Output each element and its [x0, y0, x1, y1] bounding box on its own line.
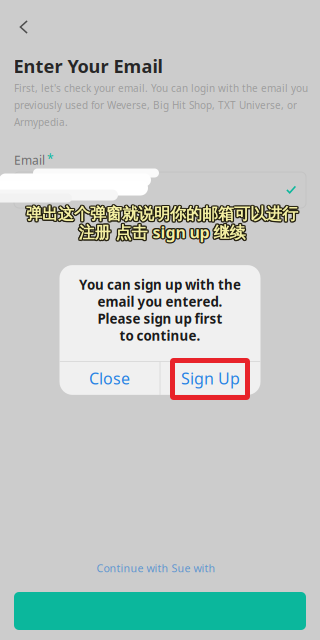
staticText: Email: [14, 152, 45, 168]
staticText: First, let's check your email. You can l…: [14, 81, 308, 95]
staticText: 注册 点击 sign up 继续: [79, 222, 246, 243]
staticText: 注册 点击 sign up 继续: [78, 223, 245, 244]
staticText: 注册 点击 sign up 继续: [80, 221, 247, 243]
staticText: 注册 点击 sign up 继续: [77, 221, 244, 243]
button[interactable]: Close: [60, 362, 160, 395]
staticText: 弹出这个弹窗就说明你的邮箱可以进行: [25, 204, 297, 224]
staticText: previously used for Weverse, Big Hit Sho…: [14, 98, 297, 112]
staticText: 弹出这个弹窗就说明你的邮箱可以进行: [26, 203, 298, 223]
button[interactable]: [14, 592, 306, 630]
staticText: 弹出这个弹窗就说明你的邮箱可以进行: [27, 204, 299, 224]
staticText: 注册 点击 sign up 继续: [78, 222, 245, 243]
staticText: 弹出这个弹窗就说明你的邮箱可以进行: [25, 205, 297, 225]
staticText: 弹出这个弹窗就说明你的邮箱可以进行: [26, 205, 298, 225]
staticText: 注册 点击 sign up 继续: [78, 221, 245, 243]
button[interactable]: Sign Up: [160, 362, 260, 395]
staticText: 弹出这个弹窗就说明你的邮箱可以进行: [27, 203, 299, 223]
staticText: You can sign up with the: [79, 276, 241, 293]
staticText: email you entered.: [97, 293, 222, 310]
staticText: 注册 点击 sign up 继续: [78, 220, 245, 241]
staticText: Continue with Sue with: [96, 561, 215, 575]
staticText: Enter Your Email: [13, 54, 162, 78]
staticText: 弹出这个弹窗就说明你的邮箱可以进行: [27, 205, 299, 225]
button[interactable]: Back: [7, 10, 41, 44]
staticText: 弹出这个弹窗就说明你的邮箱可以进行: [26, 204, 298, 224]
staticText: Please sign up first: [97, 310, 222, 327]
staticText: to continue.: [119, 327, 200, 344]
staticText: *: [47, 150, 54, 166]
button[interactable]: Continue with Sue with: [96, 560, 215, 576]
staticText: 注册 点击 sign up 继续: [78, 220, 245, 242]
staticText: 注册 点击 sign up 继续: [79, 220, 246, 242]
staticText: Sign Up: [181, 368, 240, 389]
staticText: Armypedia.: [14, 115, 68, 129]
staticText: 弹出这个弹窗就说明你的邮箱可以进行: [25, 203, 297, 223]
staticText: Close: [89, 368, 130, 389]
